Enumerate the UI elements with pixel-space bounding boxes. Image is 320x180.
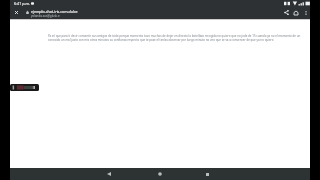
button[interactable]: Close bbox=[10, 6, 23, 19]
button[interactable]: Home bbox=[149, 168, 171, 180]
staticText: ejemplo-chat-iris.com.dulce bbox=[31, 9, 78, 14]
staticText: Ya sé que para ti decir consentir sus am… bbox=[48, 34, 310, 42]
button[interactable]: Recent apps bbox=[196, 168, 218, 180]
button[interactable]: More options bbox=[301, 6, 310, 19]
staticText: 6:41 p.m. bbox=[14, 1, 30, 6]
button[interactable]: Back bbox=[98, 168, 120, 180]
button[interactable]: Share bbox=[281, 6, 291, 19]
button[interactable]: Video player bbox=[10, 84, 39, 91]
button[interactable]: Bookmark bbox=[291, 6, 301, 19]
staticText: yolanda-sus@gb.sk.e bbox=[31, 14, 60, 18]
